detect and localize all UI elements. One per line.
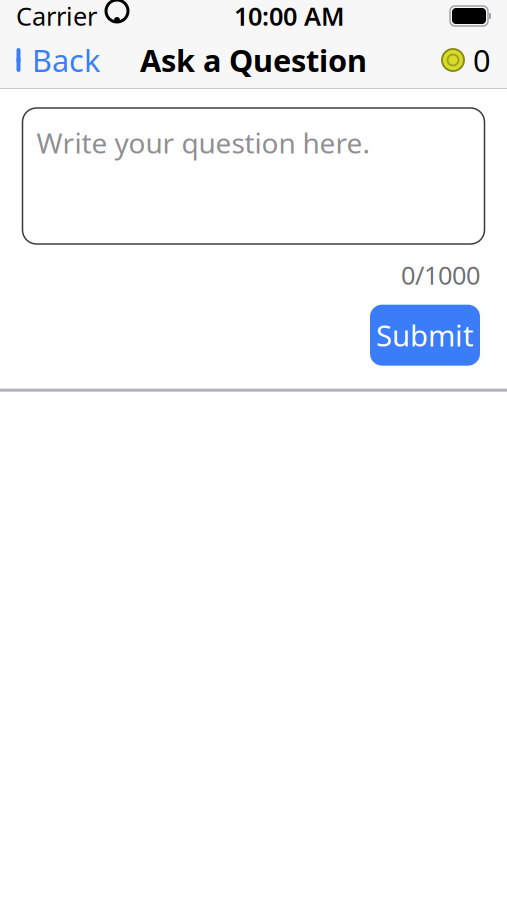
staticText: 0: [473, 40, 491, 80]
staticText: 10:00 AM: [234, 0, 345, 33]
button[interactable]: Submit: [370, 305, 480, 366]
button[interactable]: Coins: 0: [425, 32, 507, 88]
button[interactable]: Back: [0, 32, 114, 88]
staticText: 0/1000: [401, 258, 480, 292]
staticText: Write your question here.: [36, 124, 370, 161]
staticText: Back: [32, 40, 100, 80]
staticText: Submit: [376, 316, 474, 355]
staticText: Carrier: [16, 0, 97, 33]
staticText: Ask a Question: [140, 40, 367, 80]
button[interactable]: Question text field: [22, 108, 484, 244]
